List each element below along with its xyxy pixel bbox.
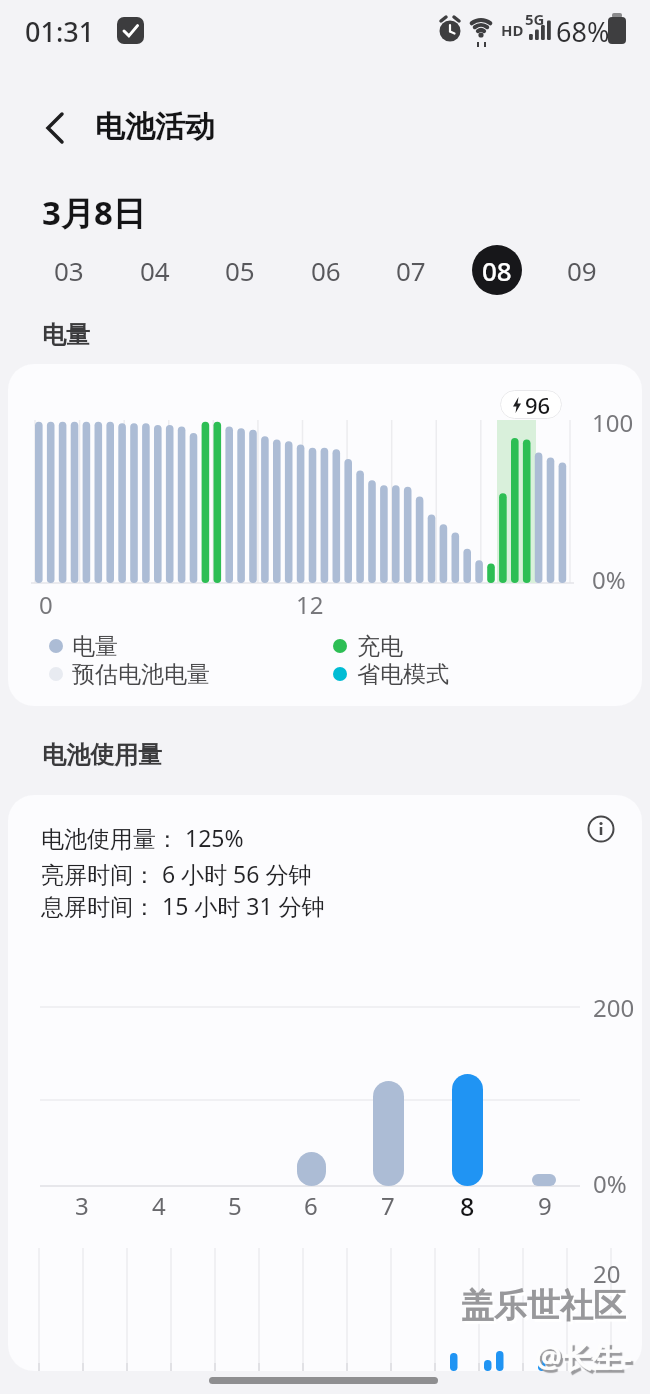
staticText: 充电 — [357, 632, 403, 661]
staticText: 0 — [39, 588, 53, 621]
button[interactable]: 03 — [44, 245, 94, 295]
staticText: HD — [501, 20, 524, 40]
staticText: 省电模式 — [357, 660, 449, 689]
staticText: 08 — [482, 253, 512, 288]
button[interactable]: 08 — [472, 245, 522, 295]
button[interactable]: 06 — [301, 245, 351, 295]
staticText: 100 — [592, 406, 634, 439]
staticText: 3月8日 — [42, 190, 146, 235]
staticText: 息屏时间： 15 小时 31 分钟 — [41, 890, 325, 921]
staticText: 07 — [396, 253, 426, 288]
button[interactable] — [30, 100, 80, 156]
staticText: 9 — [538, 1189, 552, 1222]
staticText: 电池使用量 — [42, 740, 162, 770]
button[interactable] — [209, 1377, 438, 1384]
staticText: 亮屏时间： 6 小时 56 分钟 — [41, 858, 312, 889]
button[interactable]: 05 — [215, 245, 265, 295]
staticText: 20 — [593, 1257, 621, 1290]
staticText: 5G — [525, 9, 545, 29]
button[interactable]: 04 — [130, 245, 180, 295]
staticText: 04 — [140, 253, 170, 288]
staticText: 电量 — [42, 320, 90, 350]
button[interactable]: 09 — [557, 245, 607, 295]
button[interactable] — [587, 815, 615, 843]
staticText: 预估电池电量 — [72, 660, 210, 689]
staticText: 200 — [593, 991, 635, 1024]
button[interactable]: 07 — [386, 245, 436, 295]
staticText: 6 — [304, 1189, 318, 1222]
staticText: 电池使用量： 125% — [41, 822, 244, 853]
staticText: 68% — [556, 13, 610, 50]
staticText: 06 — [311, 253, 341, 288]
staticText: 8 — [460, 1189, 475, 1223]
staticText: 0% — [592, 563, 626, 596]
staticText: 96 — [525, 390, 551, 419]
staticText: 0% — [593, 1167, 627, 1200]
staticText: 09 — [567, 253, 597, 288]
staticText: 电量 — [72, 632, 118, 661]
staticText: 05 — [225, 253, 255, 288]
staticText: 4 — [152, 1189, 166, 1222]
staticText: 盖乐世社区 — [461, 1285, 626, 1327]
staticText: 12 — [296, 588, 324, 621]
staticText: 电池活动 — [95, 108, 215, 146]
staticText: 7 — [381, 1189, 395, 1222]
staticText: @长生- — [535, 1336, 632, 1377]
staticText: 3 — [75, 1189, 89, 1222]
staticText: 03 — [54, 253, 84, 288]
staticText: 01:31 — [25, 13, 95, 50]
staticText: 5 — [228, 1189, 242, 1222]
